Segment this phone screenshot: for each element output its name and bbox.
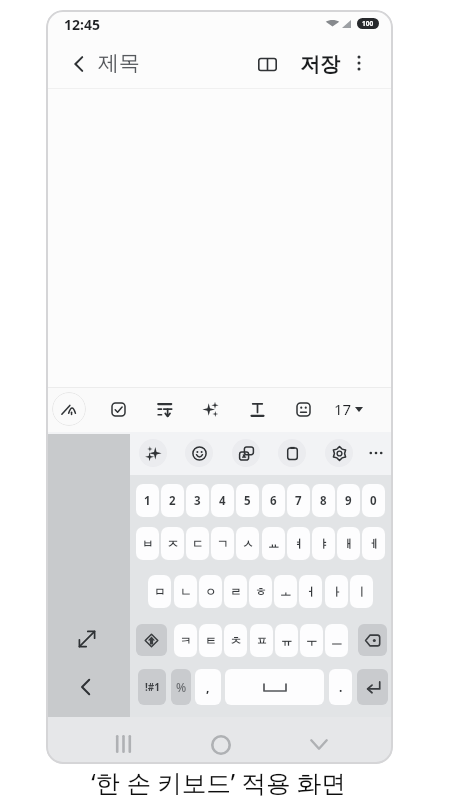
button[interactable]: Backspace bbox=[358, 624, 387, 656]
button[interactable]: Shift bbox=[136, 624, 167, 656]
button[interactable]: AI suggestions bbox=[139, 439, 167, 467]
button[interactable]: Home bbox=[203, 727, 239, 763]
button[interactable]: ㅅ bbox=[236, 527, 259, 560]
staticText: % bbox=[176, 679, 187, 695]
staticText: 2 bbox=[169, 493, 176, 509]
button[interactable]: ㅣ bbox=[350, 575, 373, 608]
staticText: ㅐ bbox=[343, 537, 355, 551]
staticText: 8 bbox=[320, 493, 327, 509]
button[interactable]: Enter bbox=[357, 669, 388, 705]
button[interactable]: ㄱ bbox=[211, 527, 234, 560]
staticText: ㅈ bbox=[167, 537, 179, 551]
button[interactable]: Back bbox=[301, 726, 337, 762]
button[interactable]: More options bbox=[345, 49, 373, 77]
staticText: 6 bbox=[270, 493, 277, 509]
staticText: 3 bbox=[194, 493, 201, 509]
staticText: 100 bbox=[362, 19, 374, 28]
button[interactable]: 9 bbox=[337, 484, 360, 517]
button[interactable]: More keyboard options bbox=[362, 439, 390, 467]
button[interactable]: 8 bbox=[312, 484, 335, 517]
button[interactable]: 2 bbox=[161, 484, 184, 517]
staticText: ㅊ bbox=[230, 634, 242, 648]
button[interactable]: Clipboard bbox=[278, 439, 306, 467]
button[interactable]: ㅂ bbox=[136, 527, 159, 560]
button[interactable]: 저장 bbox=[300, 52, 340, 77]
button[interactable]: 3 bbox=[186, 484, 209, 517]
button[interactable]: ㅓ bbox=[299, 575, 322, 608]
button[interactable]: !#1 bbox=[138, 669, 166, 705]
button[interactable]: Back bbox=[62, 47, 96, 81]
staticText: 9 bbox=[345, 493, 352, 509]
button[interactable]: ㅁ bbox=[148, 575, 171, 608]
button[interactable]: 7 bbox=[287, 484, 310, 517]
button[interactable]: Text format bbox=[149, 394, 179, 424]
button[interactable]: ㅔ bbox=[362, 527, 385, 560]
button[interactable]: ㄴ bbox=[174, 575, 197, 608]
button[interactable]: ㅠ bbox=[275, 624, 298, 657]
button[interactable]: ㅕ bbox=[287, 527, 310, 560]
staticText: 저장 bbox=[300, 52, 340, 77]
button[interactable]: 4 bbox=[211, 484, 234, 517]
staticText: ㅋ bbox=[180, 634, 192, 648]
button[interactable]: AI assist bbox=[195, 394, 225, 424]
staticText: ㅓ bbox=[305, 585, 317, 599]
button[interactable]: ㅐ bbox=[337, 527, 360, 560]
button[interactable]: Insert bbox=[288, 394, 318, 424]
button[interactable]: ㅎ bbox=[249, 575, 272, 608]
button[interactable]: 5 bbox=[236, 484, 259, 517]
button[interactable]: . bbox=[329, 669, 352, 705]
staticText: 0 bbox=[370, 493, 377, 509]
button[interactable]: ㄷ bbox=[186, 527, 209, 560]
button[interactable]: Handwriting bbox=[52, 392, 86, 426]
staticText: 4 bbox=[219, 493, 226, 509]
button[interactable]: ㅑ bbox=[312, 527, 335, 560]
button[interactable]: ㅗ bbox=[274, 575, 297, 608]
button[interactable]: ㅋ bbox=[174, 624, 197, 657]
staticText: !#1 bbox=[145, 680, 160, 694]
button[interactable]: Switch keyboard side bbox=[68, 669, 104, 705]
button[interactable]: Recents bbox=[105, 726, 141, 762]
button[interactable]: ㄹ bbox=[224, 575, 247, 608]
button[interactable]: Resize keyboard bbox=[69, 621, 105, 657]
button[interactable]: Checklist bbox=[103, 394, 133, 424]
button[interactable]: ㅌ bbox=[199, 624, 222, 657]
staticText: ㅠ bbox=[281, 634, 293, 648]
button[interactable]: Text style bbox=[242, 394, 272, 424]
button[interactable]: ㅈ bbox=[161, 527, 184, 560]
button[interactable]: ㅏ bbox=[325, 575, 348, 608]
button[interactable]: , bbox=[195, 669, 221, 705]
staticText: ㄱ bbox=[217, 537, 229, 551]
button[interactable]: ㅡ bbox=[325, 624, 348, 657]
staticText: ㅔ bbox=[368, 537, 380, 551]
button[interactable]: ㅍ bbox=[250, 624, 273, 657]
staticText: ㅌ bbox=[205, 634, 217, 648]
button[interactable]: Dictionary bbox=[252, 49, 282, 79]
button[interactable]: 0 bbox=[362, 484, 385, 517]
button[interactable]: 1 bbox=[136, 484, 159, 517]
staticText: 1 bbox=[144, 493, 151, 509]
button[interactable]: Translate bbox=[232, 439, 260, 467]
staticText: ㄹ bbox=[230, 585, 242, 599]
staticText: ㅛ bbox=[268, 537, 280, 551]
staticText: ㅏ bbox=[331, 585, 343, 599]
button[interactable]: Space bbox=[225, 669, 324, 705]
staticText: 17 bbox=[334, 399, 352, 419]
staticText: ㅡ bbox=[331, 634, 343, 648]
staticText: 제목 bbox=[98, 50, 140, 76]
button[interactable]: 6 bbox=[262, 484, 285, 517]
button[interactable]: % bbox=[171, 669, 191, 705]
staticText: ㅣ bbox=[356, 585, 368, 599]
button[interactable]: ㅇ bbox=[199, 575, 222, 608]
button[interactable]: Emoji bbox=[185, 439, 213, 467]
button[interactable]: ㅜ bbox=[300, 624, 323, 657]
button[interactable]: ㅊ bbox=[224, 624, 247, 657]
button[interactable]: ㅛ bbox=[262, 527, 285, 560]
button[interactable]: Font size bbox=[334, 397, 363, 421]
staticText: , bbox=[206, 679, 210, 695]
staticText: ㄴ bbox=[180, 585, 192, 599]
staticText: 5 bbox=[244, 493, 251, 509]
staticText: 7 bbox=[295, 493, 302, 509]
staticText: . bbox=[339, 679, 343, 695]
button[interactable]: Keyboard settings bbox=[325, 439, 353, 467]
staticText: ㅜ bbox=[306, 634, 318, 648]
